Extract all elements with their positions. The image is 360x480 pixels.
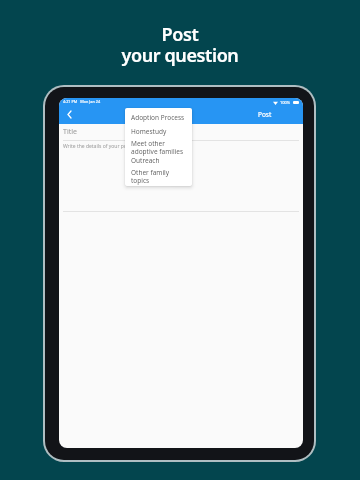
button[interactable]: Post	[255, 108, 275, 121]
staticText: 4:21 PM Mon Jan 24	[63, 99, 101, 104]
button[interactable]: Adoption Process	[125, 111, 192, 124]
staticText: Post	[258, 110, 272, 119]
button[interactable]: Meet other adoptive families	[125, 139, 192, 156]
staticText: Meet other adoptive families	[131, 139, 184, 156]
button[interactable]: Homestudy	[125, 125, 192, 138]
staticText: Post your question	[0, 22, 360, 67]
button[interactable]: Outreach	[125, 154, 192, 167]
staticText: Adoption Process	[131, 113, 185, 122]
staticText: Other family topics	[131, 168, 170, 185]
button[interactable]	[67, 111, 72, 118]
staticText: 100%	[280, 100, 291, 105]
staticText: Outreach	[131, 156, 160, 165]
button[interactable]: Other family topics	[125, 168, 192, 185]
staticText: Homestudy	[131, 127, 167, 136]
staticText: Title	[63, 127, 77, 137]
staticText: Write the details of your post	[63, 143, 132, 150]
